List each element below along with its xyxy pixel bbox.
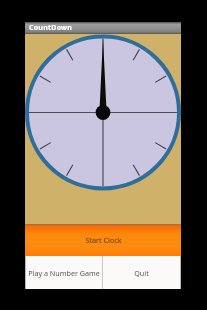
button[interactable]: Quit	[103, 256, 180, 289]
button[interactable]: Start Clock	[25, 224, 181, 256]
staticText: CountDown	[29, 23, 73, 33]
staticText: Quit	[134, 268, 149, 278]
button[interactable]: Play a Number Game	[26, 256, 102, 289]
staticText: Play a Number Game	[28, 268, 100, 278]
staticText: Start Clock	[85, 235, 122, 245]
